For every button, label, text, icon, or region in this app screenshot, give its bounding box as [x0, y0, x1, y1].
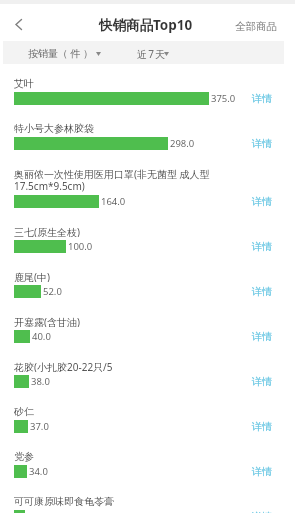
staticText: 52.0	[43, 285, 62, 298]
button[interactable]: 三七(原生全枝)	[0, 225, 295, 270]
staticText: 花胶(小扎胶20-22只/5	[14, 360, 113, 372]
button[interactable]: 按销量	[28, 47, 101, 60]
staticText: 298.0	[170, 137, 195, 150]
staticText: 党参	[14, 450, 34, 462]
staticText: 详情	[252, 92, 272, 105]
button[interactable]: 奥丽侬一次性使用医用口罩(非无菌型 成人型 17.5cm*9.5cm)	[0, 167, 295, 225]
button[interactable]: 砂仁	[0, 405, 295, 450]
button[interactable]: 详情	[252, 465, 272, 478]
staticText: 奥丽侬一次性使用医用口罩(非无菌型 成人型 17.5cm*9.5cm)	[14, 167, 237, 192]
staticText: 全部商品	[235, 20, 277, 33]
button[interactable]: 近7天	[137, 47, 172, 61]
button[interactable]: 特小号大参林胶袋	[0, 122, 295, 167]
staticText: 砂仁	[14, 405, 34, 417]
staticText: 详情	[252, 465, 272, 478]
staticText: 详情	[252, 137, 272, 150]
button[interactable]: 详情	[252, 195, 272, 208]
button[interactable]: 党参	[0, 450, 295, 495]
staticText: 40.0	[32, 330, 51, 343]
staticText: 34.0	[29, 465, 48, 478]
staticText: 可可康原味即食龟苓膏	[14, 495, 114, 507]
staticText: 详情	[252, 240, 272, 253]
staticText: 按销量	[28, 47, 58, 60]
staticText: 特小号大参林胶袋	[14, 122, 94, 134]
staticText: 详情	[252, 330, 272, 343]
staticText: 38.0	[31, 375, 50, 388]
staticText: 164.0	[101, 195, 126, 208]
staticText: 快销商品Top10	[99, 16, 193, 34]
staticText: 鹿尾(中)	[14, 270, 50, 282]
button[interactable]: 详情	[252, 137, 272, 150]
button[interactable]: 详情	[252, 92, 272, 105]
button[interactable]: 详情	[252, 510, 272, 523]
staticText: 详情	[252, 195, 272, 208]
staticText: 375.0	[211, 92, 236, 105]
button[interactable]: 可可康原味即食龟苓膏	[0, 495, 295, 523]
staticText: （件）	[58, 47, 96, 60]
button[interactable]: 详情	[252, 285, 272, 298]
staticText: 近7天	[137, 47, 167, 61]
button[interactable]: 详情	[252, 375, 272, 388]
button[interactable]: 详情	[252, 240, 272, 253]
staticText: 详情	[252, 285, 272, 298]
button[interactable]: 艾叶	[0, 77, 295, 122]
staticText: 三七(原生全枝)	[14, 225, 80, 237]
staticText: 开塞露(含甘油)	[14, 315, 80, 327]
staticText: 详情	[252, 375, 272, 388]
staticText: 详情	[252, 510, 272, 523]
staticText: 详情	[252, 420, 272, 433]
button[interactable]: 鹿尾(中)	[0, 270, 295, 315]
staticText: 艾叶	[14, 77, 34, 89]
button[interactable]: 花胶(小扎胶20-22只/5	[0, 360, 295, 405]
button[interactable]: Back	[0, 4, 36, 41]
button[interactable]: 详情	[252, 330, 272, 343]
button[interactable]: 全部商品	[235, 4, 277, 41]
button[interactable]: 开塞露(含甘油)	[0, 315, 295, 360]
staticText: 37.0	[30, 420, 49, 433]
staticText: 100.0	[68, 240, 93, 253]
button[interactable]: 详情	[252, 420, 272, 433]
